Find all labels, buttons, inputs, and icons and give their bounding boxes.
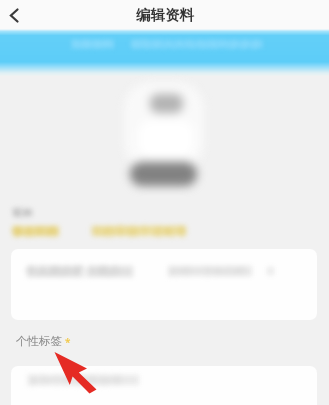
staticText: 个性标签 — [16, 334, 62, 348]
button[interactable]: 完善资料 — [0, 29, 329, 76]
button[interactable]: Back — [0, 1, 28, 29]
staticText: 领取新人大礼包福利多多多 — [130, 37, 262, 51]
staticText: 编辑资料 — [136, 6, 194, 24]
staticText: 个人简介简介简介 — [25, 263, 121, 278]
staticText: 添加个性标签标签 — [27, 372, 123, 387]
staticText: * — [65, 335, 71, 349]
button[interactable]: 个性标签 — [16, 334, 71, 348]
staticText: 昵称审核中请耐等 — [91, 223, 187, 238]
button[interactable]: Upload avatar — [130, 162, 197, 186]
button[interactable]: Change avatar — [124, 82, 204, 170]
staticText: 介绍一下自己吧 — [169, 264, 246, 278]
button[interactable]: 添加个性标签标签 — [11, 366, 317, 405]
staticText: 昵称 — [13, 206, 33, 219]
staticText: 修改昵称 — [11, 223, 59, 238]
button[interactable]: 个人简介简介简介 — [11, 249, 317, 320]
staticText: 完善资料 — [70, 37, 114, 51]
